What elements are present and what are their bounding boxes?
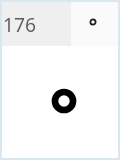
staticText: 176 — [3, 11, 36, 37]
button[interactable]: 176 — [2, 2, 71, 46]
button[interactable]: Record — [85, 14, 101, 30]
button[interactable]: Record — [48, 85, 80, 117]
